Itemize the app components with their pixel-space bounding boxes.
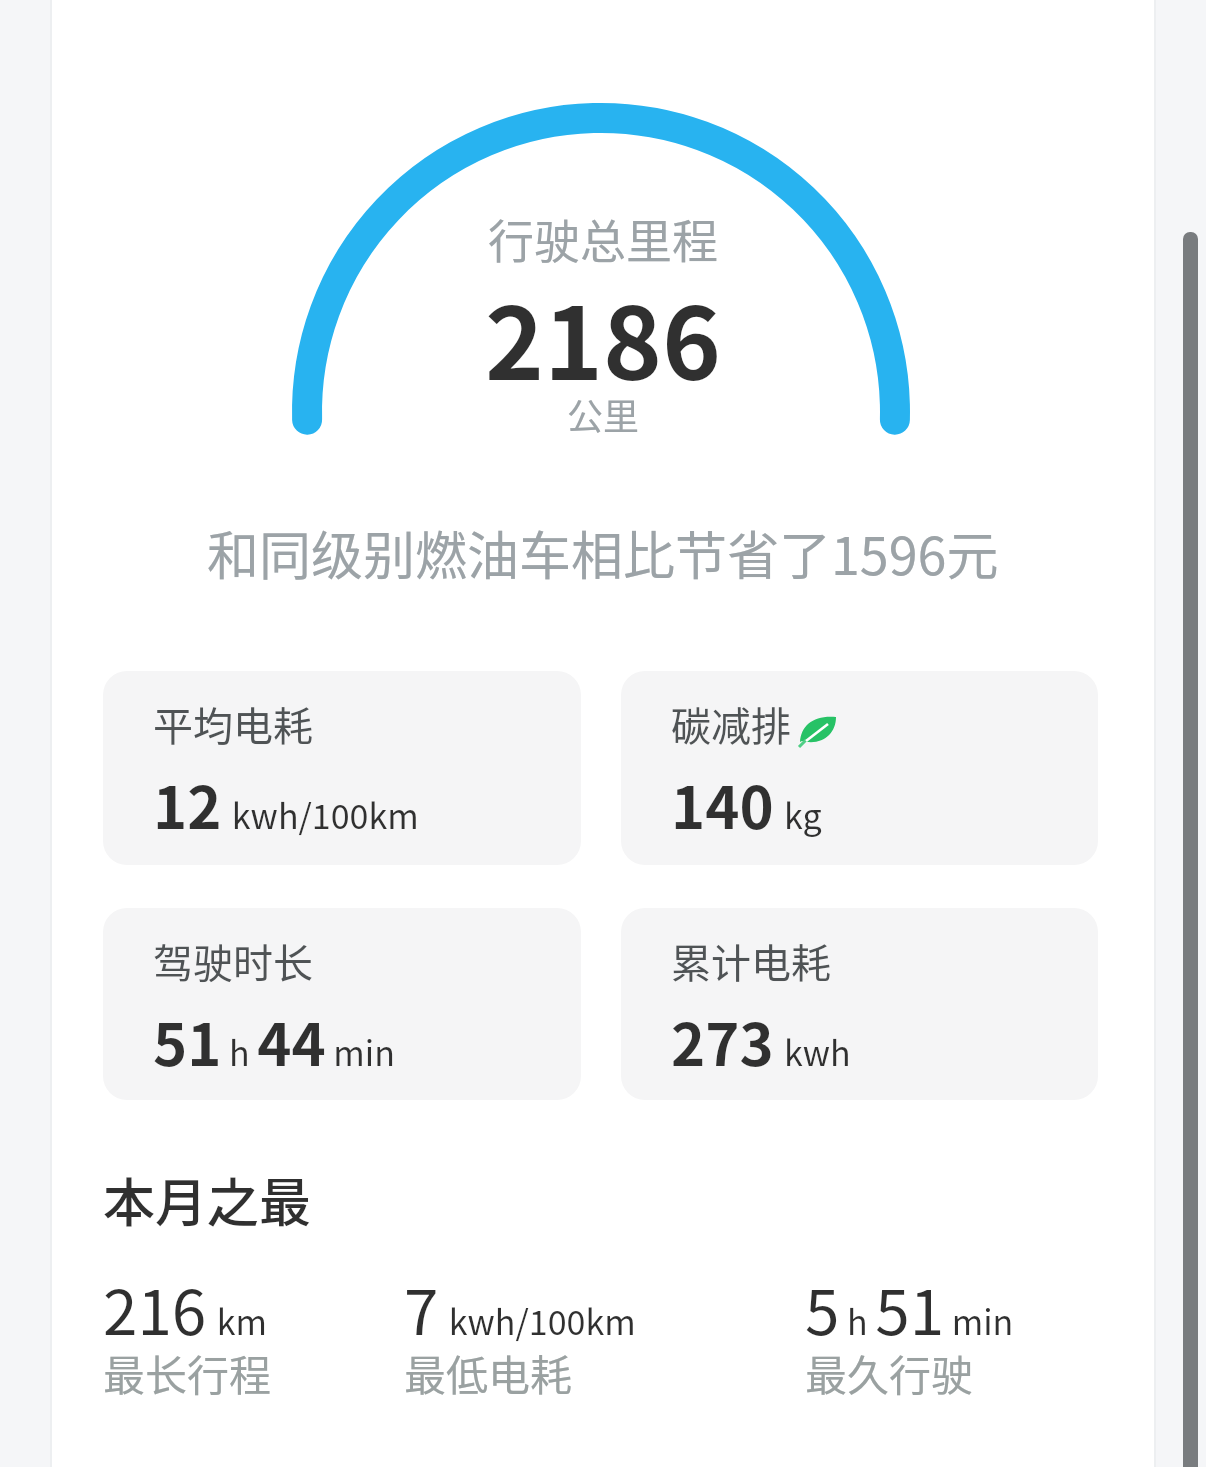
- staticText: 7 kwh/100km: [404, 1263, 636, 1353]
- staticText: 140 kg: [671, 762, 822, 846]
- button[interactable]: 累计电耗: [621, 908, 1098, 1100]
- button[interactable]: 7 kwh/100km: [404, 1263, 636, 1353]
- staticText: 碳减排: [671, 695, 791, 753]
- staticText: 12 kwh/100km: [153, 762, 419, 846]
- staticText: 行驶总里程: [488, 205, 718, 272]
- button[interactable]: 平均电耗: [103, 671, 581, 865]
- button[interactable]: 驾驶时长: [103, 908, 581, 1100]
- staticText: 51 h 44 min: [153, 999, 395, 1083]
- staticText: 和同级别燃油车相比节省了1596元: [207, 515, 999, 590]
- button[interactable]: 5 h 51 min: [805, 1263, 1014, 1353]
- button[interactable]: 碳减排: [621, 671, 1098, 865]
- staticText: 驾驶时长: [153, 932, 313, 990]
- staticText: 累计电耗: [671, 932, 831, 990]
- staticText: 216 km: [103, 1263, 267, 1353]
- staticText: 最长行程: [103, 1342, 272, 1403]
- button[interactable]: 216 km: [103, 1263, 272, 1353]
- staticText: 最久行驶: [805, 1342, 974, 1403]
- staticText: 最低电耗: [404, 1342, 573, 1403]
- staticText: 平均电耗: [153, 695, 313, 753]
- staticText: 273 kwh: [671, 999, 851, 1083]
- staticText: 公里: [567, 388, 640, 440]
- staticText: 本月之最: [103, 1162, 312, 1237]
- staticText: 2186: [485, 264, 721, 409]
- staticText: 5 h 51 min: [805, 1263, 1014, 1353]
